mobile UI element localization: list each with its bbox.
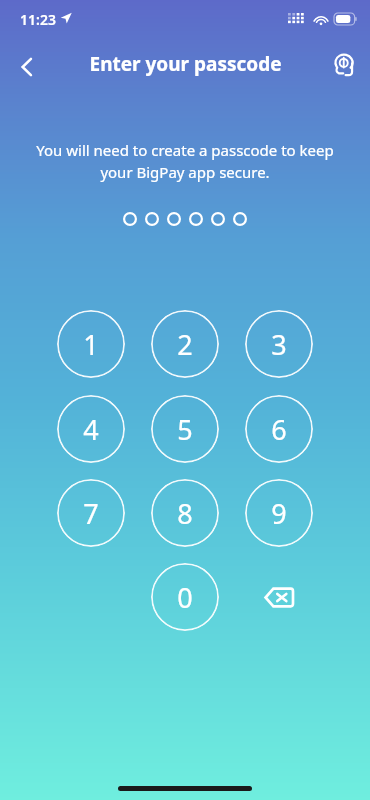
staticText: 6	[271, 411, 287, 448]
staticText: 2	[177, 326, 193, 363]
staticText: 8	[177, 495, 193, 532]
button[interactable]: 1	[57, 310, 125, 378]
staticText: 7	[83, 495, 99, 532]
button[interactable]: 8	[151, 479, 219, 547]
button[interactable]: 5	[151, 395, 219, 463]
button[interactable]: 7	[57, 479, 125, 547]
button[interactable]: Delete	[245, 563, 313, 631]
button[interactable]: 2	[151, 310, 219, 378]
staticText: 3	[271, 326, 287, 363]
button[interactable]: 4	[57, 395, 125, 463]
staticText: Enter your passcode	[89, 51, 282, 77]
button[interactable]: 6	[245, 395, 313, 463]
button[interactable]: Help and support	[322, 44, 366, 88]
staticText: You will need to create a passcode to ke…	[32, 140, 338, 183]
staticText: 5	[177, 411, 193, 448]
button[interactable]: 9	[245, 479, 313, 547]
staticText: 9	[271, 495, 287, 532]
staticText: 1	[83, 326, 99, 363]
button[interactable]: 0	[151, 563, 219, 631]
button[interactable]: 3	[245, 310, 313, 378]
staticText: 4	[83, 411, 99, 448]
staticText: 0	[177, 579, 193, 616]
staticText: 11:23	[20, 10, 56, 29]
button[interactable]: Back	[4, 44, 50, 90]
